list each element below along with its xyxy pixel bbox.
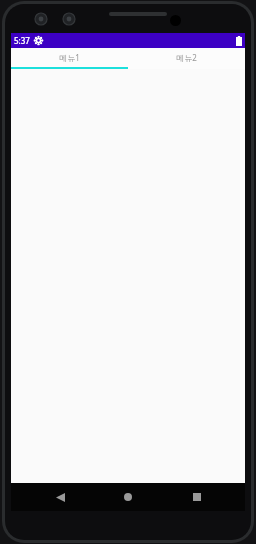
- button[interactable]: 메뉴1: [11, 48, 128, 67]
- button[interactable]: Recent apps: [177, 483, 217, 511]
- other: Battery: [236, 36, 242, 46]
- button[interactable]: Back: [40, 483, 80, 511]
- button[interactable]: 메뉴2: [128, 48, 245, 67]
- staticText: 메뉴2: [176, 52, 197, 63]
- other: Settings: [34, 36, 43, 45]
- staticText: 5:37: [14, 35, 30, 46]
- button[interactable]: Home: [108, 483, 148, 511]
- staticText: 메뉴1: [59, 52, 80, 63]
